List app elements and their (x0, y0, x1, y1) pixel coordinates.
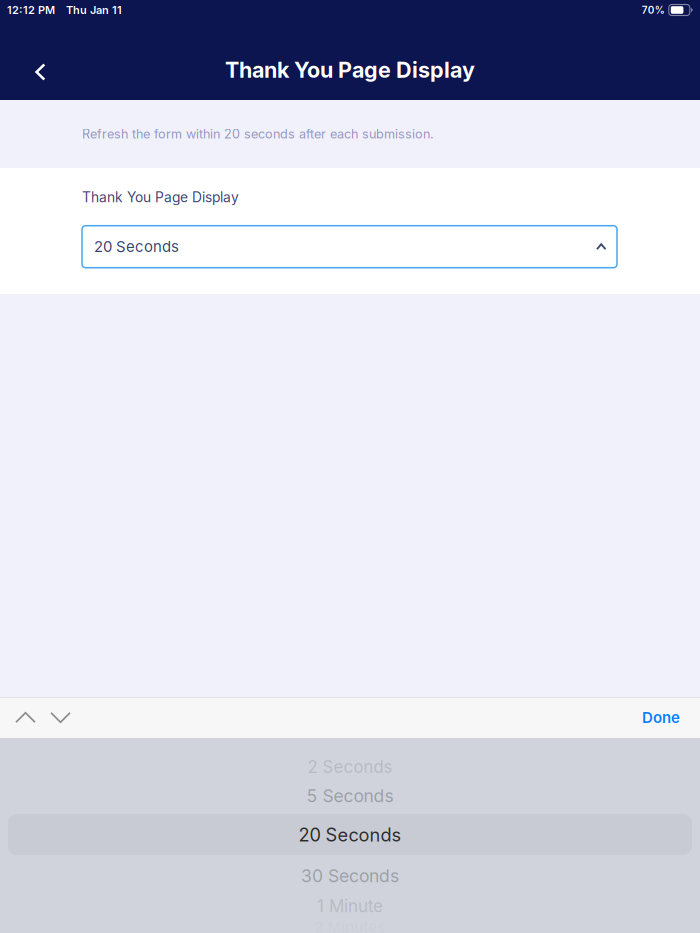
staticText: Thank You Page Display (225, 57, 475, 83)
button[interactable]: Back (0, 31, 80, 89)
button[interactable]: Next field (43, 697, 78, 737)
staticText: Thu Jan 11 (66, 3, 122, 17)
button[interactable]: Previous field (8, 697, 43, 737)
staticText: 20 Seconds (94, 238, 179, 256)
staticText: 30 Seconds (301, 865, 399, 887)
staticText: 12:12 PM (7, 3, 55, 17)
staticText: Done (642, 708, 680, 726)
button[interactable]: Done (632, 697, 690, 737)
button[interactable]: 20 Seconds (82, 226, 617, 268)
staticText: 5 Seconds (306, 785, 393, 807)
staticText: 70% (642, 4, 665, 16)
staticText: 20 Seconds (298, 824, 401, 846)
staticText: Thank You Page Display (82, 189, 239, 206)
staticText: Refresh the form within 20 seconds after… (82, 126, 434, 142)
staticText: 1 Minute (317, 896, 383, 916)
staticText: 2 Seconds (307, 757, 392, 777)
